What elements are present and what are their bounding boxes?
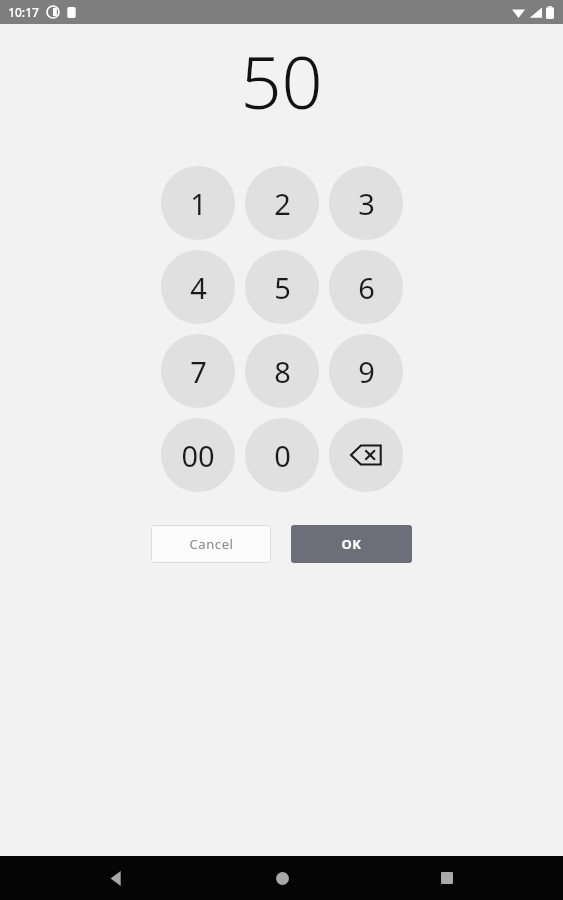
staticText: 0 [274, 436, 291, 475]
staticText: 2 [274, 184, 291, 223]
button[interactable]: 1 [161, 166, 235, 240]
button[interactable]: 0 [245, 418, 319, 492]
staticText: OK [341, 535, 362, 553]
staticText: 7 [190, 352, 207, 391]
staticText: 00 [181, 436, 215, 475]
staticText: 6 [358, 268, 375, 307]
button[interactable]: Home [258, 856, 306, 900]
staticText: 50 [240, 32, 323, 130]
staticText: Cancel [189, 535, 234, 553]
button[interactable]: Recent apps [423, 856, 471, 900]
button[interactable]: 5 [245, 250, 319, 324]
staticText: 8 [274, 352, 291, 391]
staticText: 3 [358, 184, 375, 223]
button[interactable]: 8 [245, 334, 319, 408]
button[interactable]: Cancel [151, 525, 271, 563]
staticText: 10:17 [8, 4, 39, 20]
button[interactable]: 3 [329, 166, 403, 240]
button[interactable]: 2 [245, 166, 319, 240]
staticText: 5 [274, 268, 291, 307]
button[interactable]: 6 [329, 250, 403, 324]
staticText: 1 [190, 184, 207, 223]
button[interactable]: 9 [329, 334, 403, 408]
button[interactable]: Backspace [329, 418, 403, 492]
button[interactable]: 00 [161, 418, 235, 492]
staticText: 9 [358, 352, 375, 391]
staticText: 4 [190, 268, 207, 307]
button[interactable]: 7 [161, 334, 235, 408]
button[interactable]: OK [291, 525, 412, 563]
button[interactable]: Back [92, 856, 140, 900]
button[interactable]: 4 [161, 250, 235, 324]
